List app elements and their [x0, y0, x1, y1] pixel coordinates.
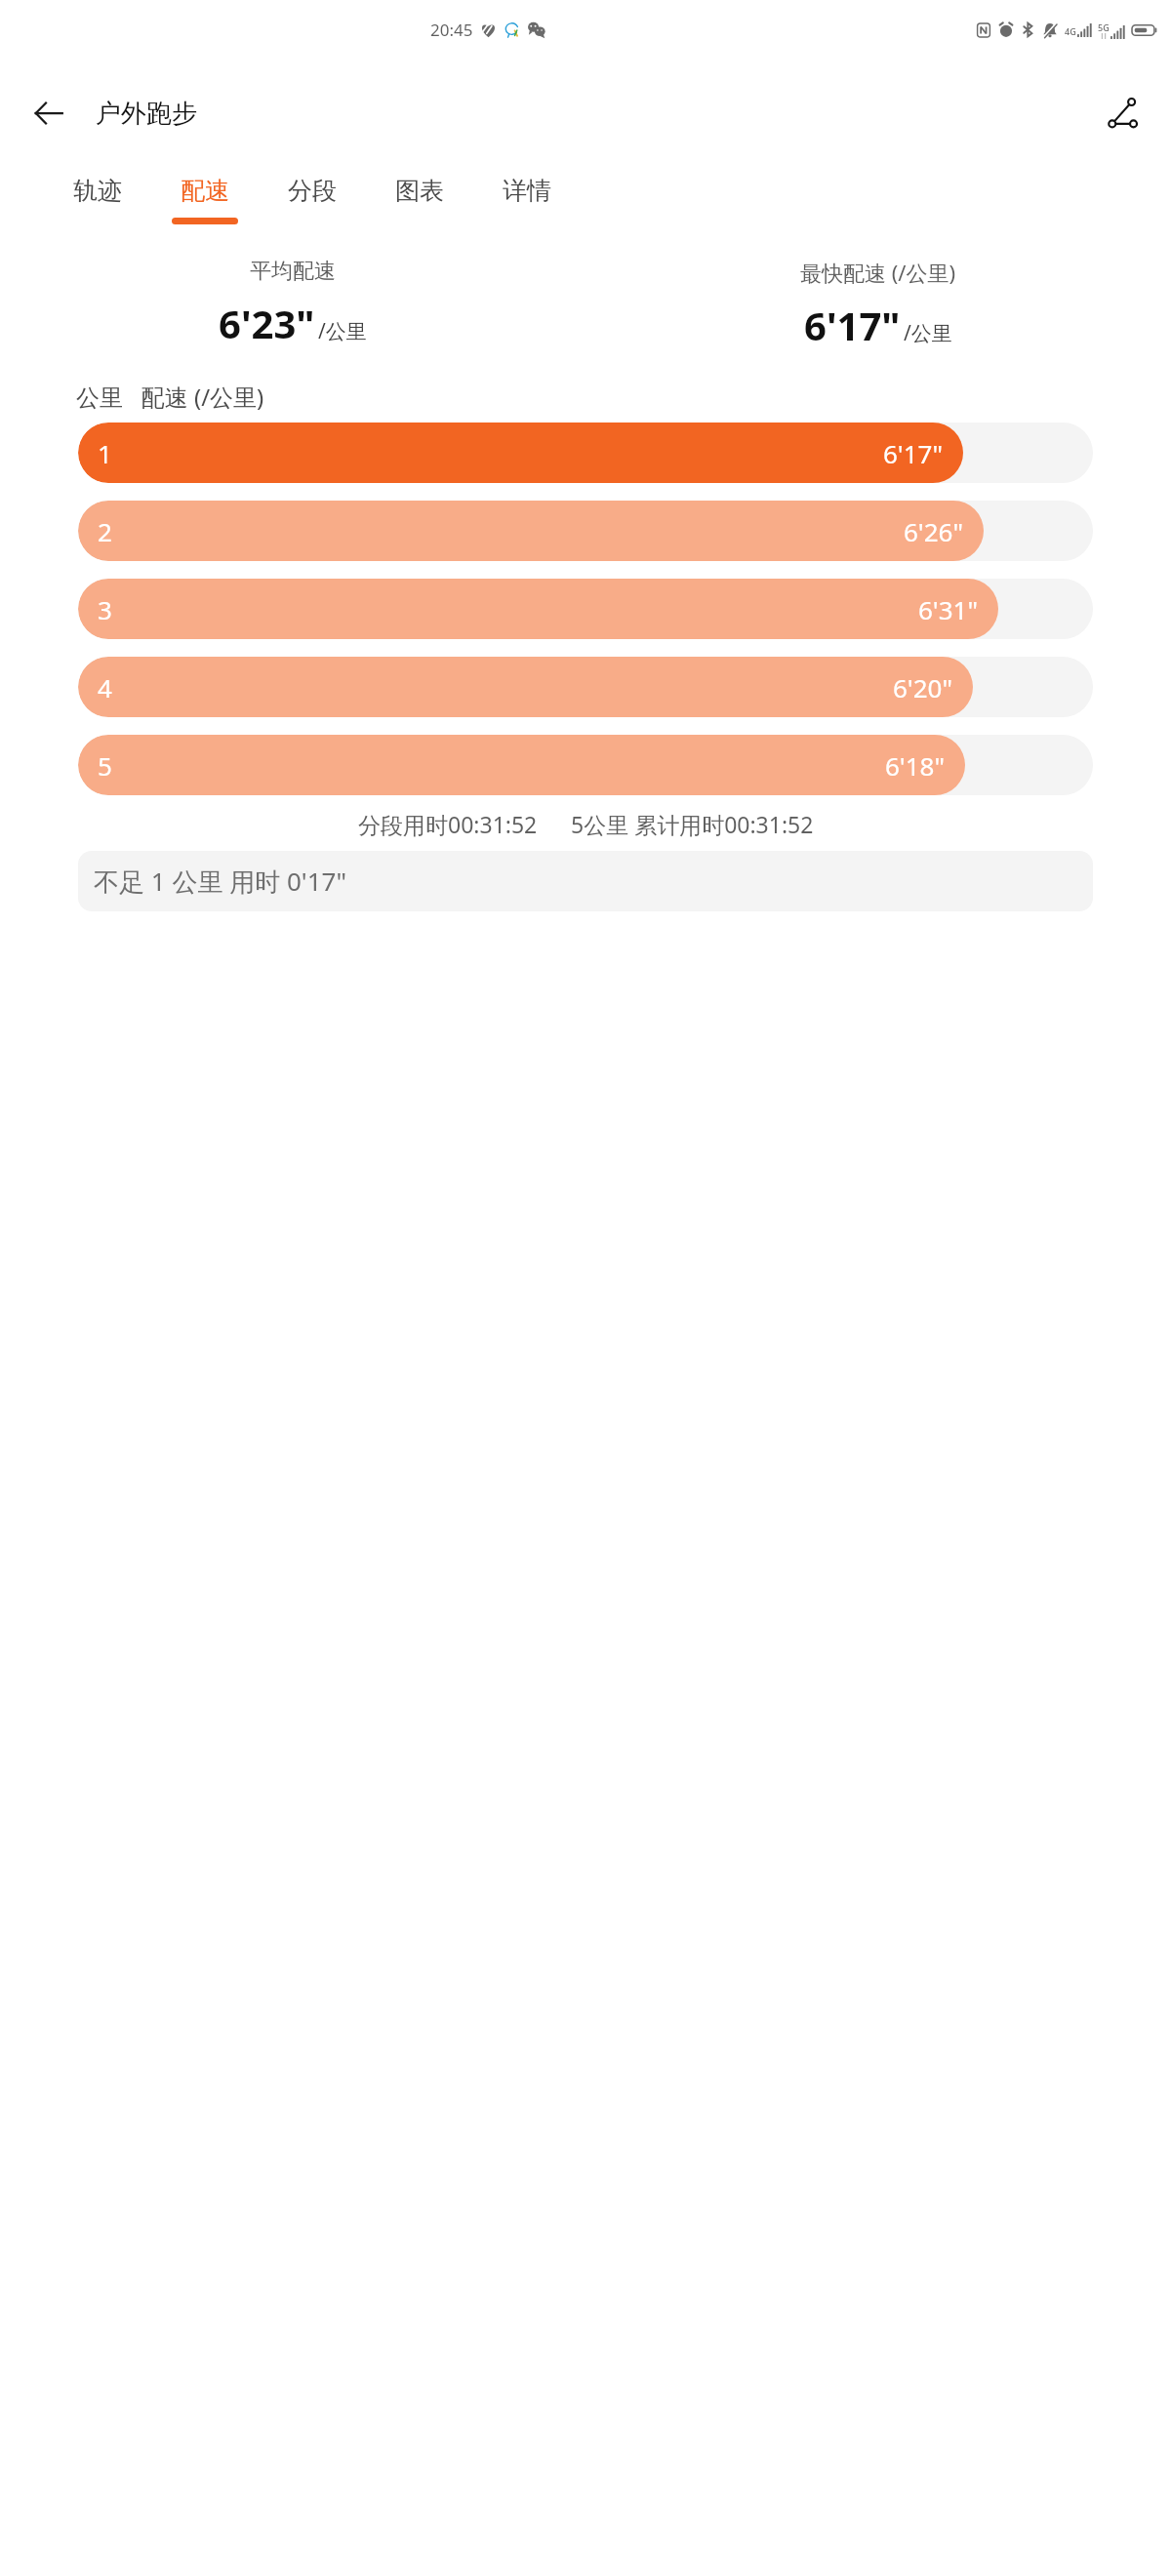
button[interactable]: 4 [78, 657, 1093, 717]
staticText: 5G [1098, 21, 1110, 33]
staticText: 6'23" [219, 297, 315, 349]
button[interactable]: 5 [78, 735, 1093, 795]
button[interactable]: 分段 [273, 168, 351, 232]
button[interactable]: 图表 [381, 168, 459, 232]
staticText: 6'26" [904, 514, 964, 548]
staticText: 2 [98, 514, 112, 548]
staticText: 图表 [395, 176, 444, 206]
button[interactable]: Back [18, 82, 80, 144]
staticText: 详情 [503, 176, 551, 206]
button[interactable]: 不足 1 公里 用时 0'17" [78, 851, 1093, 911]
staticText: 最快配速 (/公里) [800, 258, 956, 287]
staticText: 5 [98, 748, 112, 783]
staticText: 6'18" [885, 748, 946, 783]
button[interactable]: 3 [78, 579, 1093, 639]
staticText: 户外跑步 [96, 98, 197, 130]
staticText: 6'20" [893, 670, 953, 704]
staticText: 轨迹 [73, 176, 122, 206]
staticText: 3 [98, 592, 112, 626]
staticText: 5公里 累计用时00:31:52 [571, 809, 814, 839]
staticText: 1 [98, 436, 112, 470]
staticText: 6'31" [918, 592, 979, 626]
staticText: 配速 [181, 176, 229, 206]
button[interactable]: 配速 [166, 168, 244, 232]
staticText: 分段用时00:31:52 [358, 809, 538, 839]
staticText: 6'17" [804, 299, 901, 351]
button[interactable]: 轨迹 [59, 168, 137, 232]
staticText: 4 [98, 670, 112, 704]
staticText: /公里 [904, 319, 952, 347]
staticText: 20:45 [430, 19, 473, 41]
button[interactable]: 1 [78, 423, 1093, 483]
staticText: 不足 1 公里 用时 0'17" [94, 864, 346, 899]
button[interactable]: 2 [78, 501, 1093, 561]
staticText: 公里 配速 (/公里) [76, 381, 264, 413]
button[interactable]: 详情 [488, 168, 566, 232]
staticText: 平均配速 [250, 258, 336, 285]
button[interactable]: Share [1091, 82, 1153, 144]
staticText: 分段 [288, 176, 337, 206]
staticText: 4G [1065, 25, 1076, 37]
staticText: /公里 [318, 317, 367, 345]
staticText: 6'17" [883, 436, 944, 470]
